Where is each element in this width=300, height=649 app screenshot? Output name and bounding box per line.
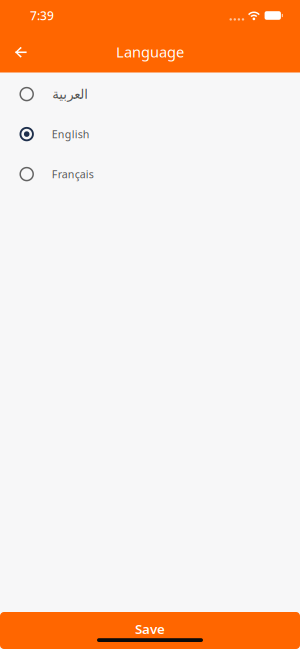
staticText: English (52, 127, 90, 141)
button[interactable]: English (0, 114, 300, 154)
staticText: 7:39 (30, 7, 54, 23)
button[interactable]: Back (6, 35, 36, 69)
staticText: العربية (52, 86, 88, 102)
staticText: Language (116, 42, 184, 61)
button[interactable]: العربية (0, 74, 300, 114)
button[interactable]: Save (0, 612, 300, 649)
button[interactable]: Français (0, 154, 300, 194)
staticText: Français (52, 167, 94, 181)
staticText: Save (135, 620, 165, 638)
